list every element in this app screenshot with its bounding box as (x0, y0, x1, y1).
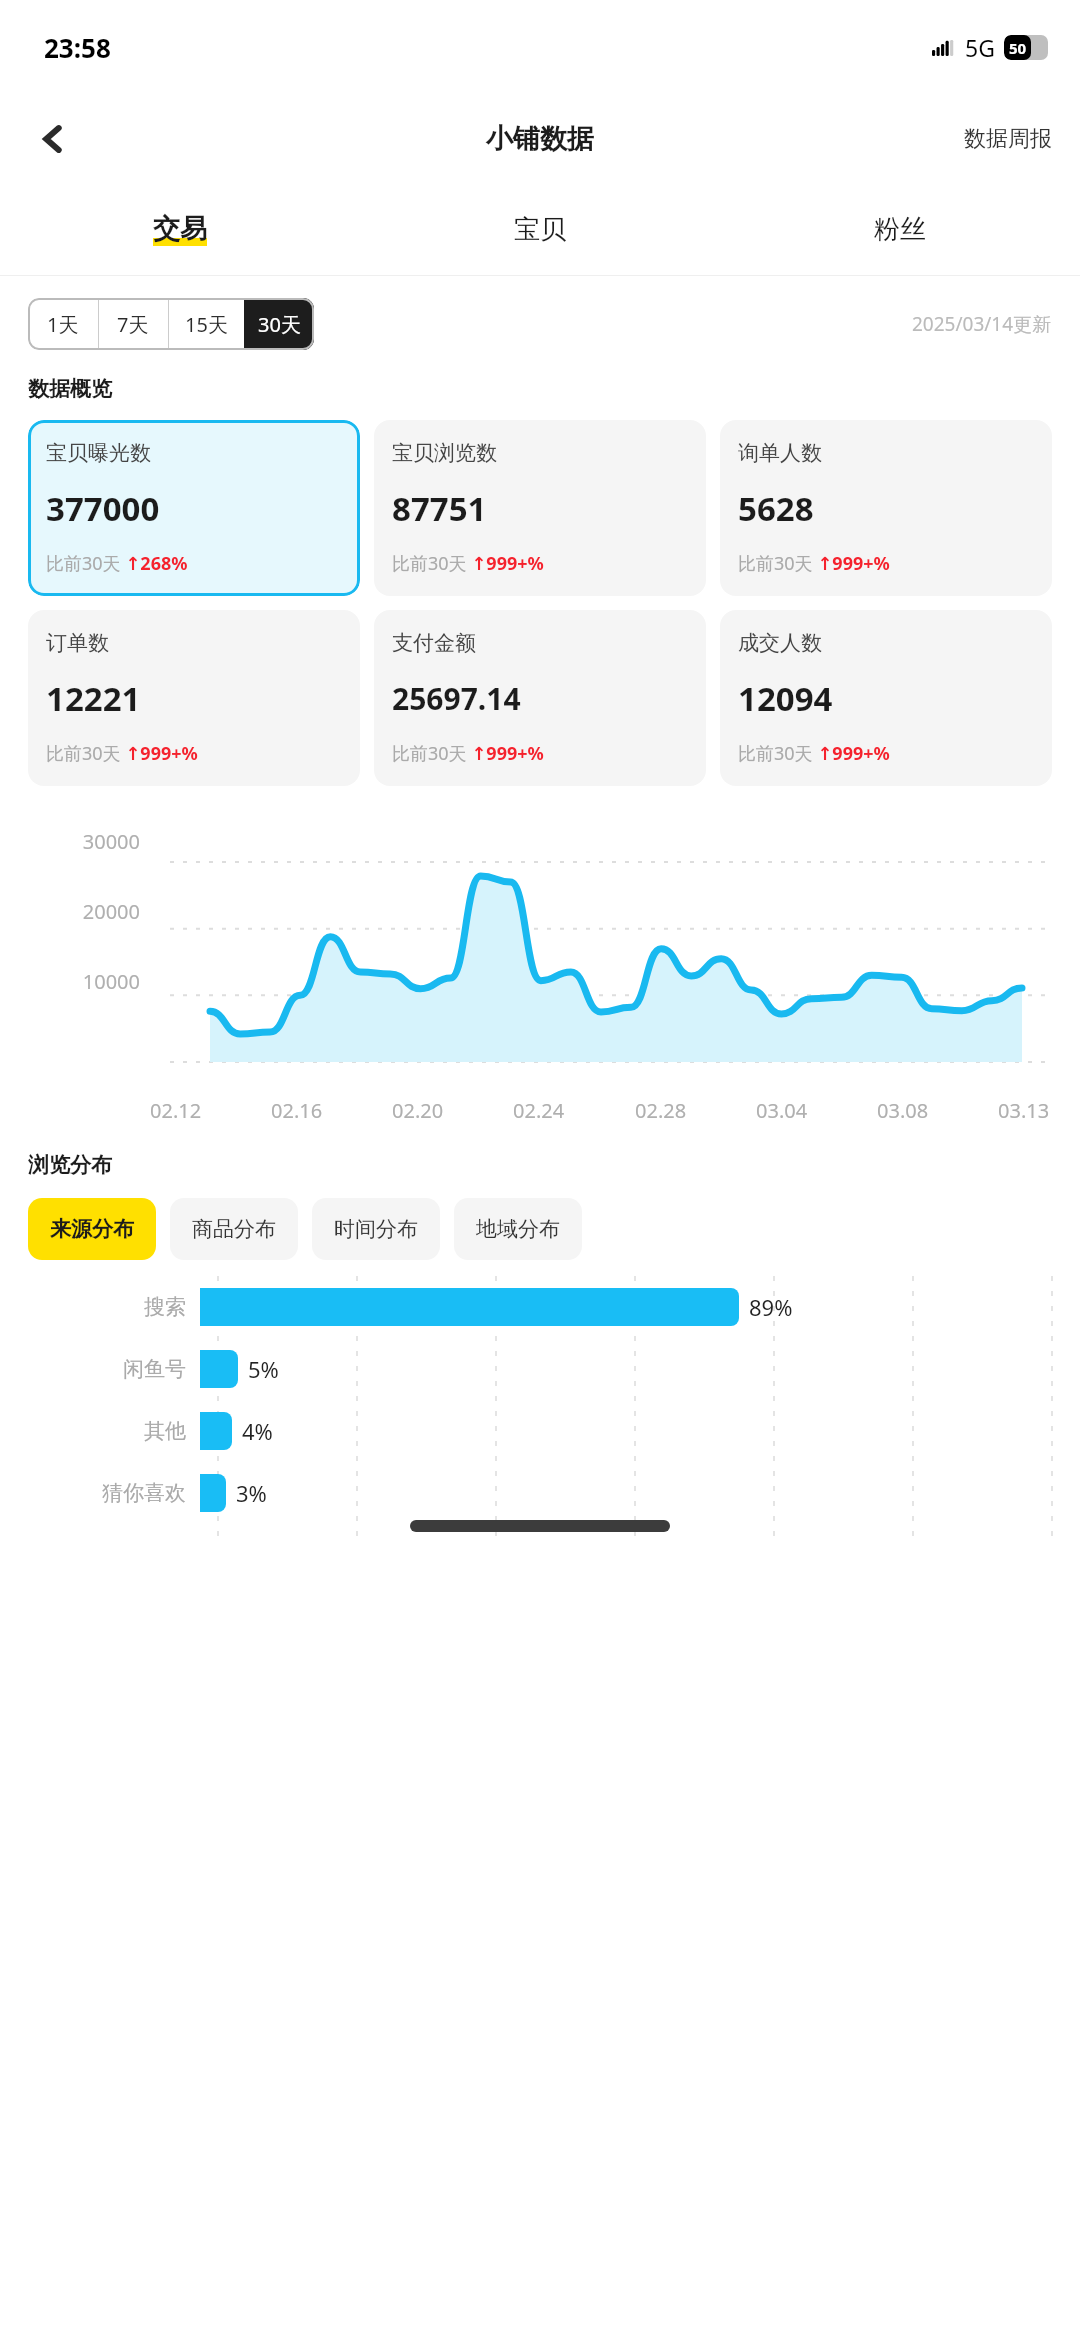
button[interactable]: 支付金额 (374, 610, 706, 786)
button[interactable]: 订单数 (28, 610, 360, 786)
staticText: 02.12 (150, 1097, 202, 1124)
staticText: 02.24 (513, 1097, 565, 1124)
staticText: 时间分布 (334, 1216, 418, 1242)
button[interactable]: 闲鱼号 (0, 1338, 1080, 1400)
staticText: 订单数 (46, 630, 109, 656)
staticText: 10000 (82, 968, 140, 995)
staticText: 搜索 (144, 1294, 186, 1320)
button[interactable]: 其他 (0, 1400, 1080, 1462)
button[interactable]: 15天 (168, 298, 244, 350)
staticText: 比前30天 ↑999+% (392, 741, 544, 766)
staticText: 03.13 (998, 1097, 1050, 1124)
staticText: 数据周报 (964, 125, 1052, 153)
staticText: 宝贝曝光数 (46, 440, 151, 466)
staticText: 比前30天 ↑999+% (738, 551, 890, 576)
button[interactable]: 时间分布 (312, 1198, 440, 1260)
button[interactable]: 猜你喜欢 (0, 1462, 1080, 1524)
button[interactable]: 商品分布 (170, 1198, 298, 1260)
staticText: 支付金额 (392, 630, 476, 656)
staticText: 2025/03/14更新 (912, 311, 1052, 337)
staticText: 小铺数据 (486, 122, 594, 156)
button[interactable]: 成交人数 (720, 610, 1052, 786)
staticText: 03.04 (756, 1097, 808, 1124)
staticText: 猜你喜欢 (102, 1480, 186, 1506)
staticText: 宝贝 (514, 213, 566, 246)
staticText: 浏览分布 (28, 1152, 112, 1178)
staticText: 1天 (47, 311, 79, 338)
button[interactable]: 30天 (244, 298, 314, 350)
staticText: 比前30天 ↑268% (46, 551, 188, 576)
staticText: 其他 (144, 1418, 186, 1444)
staticText: 比前30天 ↑999+% (46, 741, 198, 766)
staticText: 来源分布 (50, 1216, 134, 1242)
staticText: 3% (236, 1478, 267, 1508)
staticText: 闲鱼号 (123, 1356, 186, 1382)
button[interactable]: 粉丝 (720, 183, 1080, 275)
staticText: 宝贝浏览数 (392, 440, 497, 466)
staticText: 25697.14 (392, 678, 521, 719)
button[interactable]: 1天 (28, 298, 98, 350)
staticText: 02.16 (271, 1097, 323, 1124)
staticText: 粉丝 (874, 213, 926, 246)
staticText: 询单人数 (738, 440, 822, 466)
staticText: 12094 (738, 676, 833, 721)
staticText: 12221 (46, 676, 141, 721)
button[interactable]: 宝贝曝光数 (28, 420, 360, 596)
button[interactable]: 交易 (0, 183, 360, 275)
staticText: 商品分布 (192, 1216, 276, 1242)
staticText: 5628 (738, 486, 814, 531)
staticText: 30000 (82, 828, 140, 855)
staticText: 377000 (46, 486, 160, 531)
button[interactable]: 宝贝 (360, 183, 720, 275)
staticText: 7天 (117, 311, 149, 338)
staticText: 比前30天 ↑999+% (738, 741, 890, 766)
staticText: 02.20 (392, 1097, 444, 1124)
staticText: 成交人数 (738, 630, 822, 656)
staticText: 89% (749, 1292, 793, 1322)
staticText: 50 (1009, 38, 1027, 58)
staticText: 地域分布 (476, 1216, 560, 1242)
staticText: 23:58 (44, 30, 111, 65)
staticText: 比前30天 ↑999+% (392, 551, 544, 576)
button[interactable]: 7天 (98, 298, 168, 350)
staticText: 5G (965, 32, 995, 63)
button[interactable]: 来源分布 (28, 1198, 156, 1260)
staticText: 15天 (185, 311, 228, 338)
staticText: 4% (242, 1416, 273, 1446)
button[interactable]: 返回 (26, 112, 80, 166)
staticText: 87751 (392, 486, 487, 531)
button[interactable]: 宝贝浏览数 (374, 420, 706, 596)
button[interactable]: 询单人数 (720, 420, 1052, 596)
staticText: 30天 (258, 311, 301, 338)
button[interactable]: 数据周报 (964, 125, 1052, 153)
button[interactable]: 搜索 (0, 1276, 1080, 1338)
staticText: 5% (248, 1354, 279, 1384)
staticText: 数据概览 (28, 376, 112, 402)
staticText: 03.08 (877, 1097, 929, 1124)
staticText: 20000 (82, 898, 140, 925)
staticText: 02.28 (635, 1097, 687, 1124)
staticText: 交易 (153, 212, 207, 246)
button[interactable]: 地域分布 (454, 1198, 582, 1260)
